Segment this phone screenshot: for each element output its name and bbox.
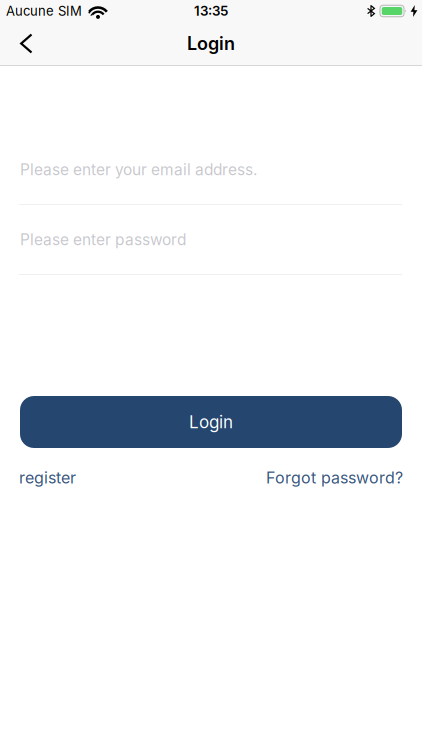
staticText: Login	[187, 33, 235, 54]
staticText: Forgot password?	[266, 468, 403, 487]
button[interactable]: Forgot password?	[266, 468, 403, 487]
staticText: Aucune SIM	[6, 3, 82, 19]
staticText: register	[19, 468, 76, 487]
staticText: 13:35	[194, 3, 228, 19]
button[interactable]: Login	[20, 396, 402, 448]
staticText: Login	[189, 412, 233, 432]
staticText: Please enter your email address.	[20, 160, 257, 179]
button[interactable]: register	[19, 468, 76, 487]
button[interactable]: Back	[0, 23, 33, 63]
staticText: Please enter password	[20, 230, 186, 249]
